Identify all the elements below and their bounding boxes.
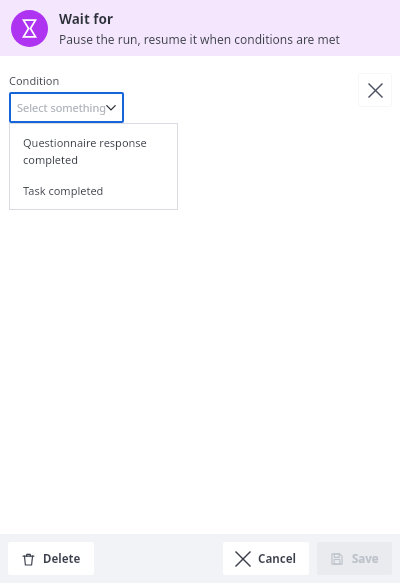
staticText: Wait for bbox=[59, 10, 113, 28]
staticText: Delete bbox=[43, 551, 81, 567]
button[interactable]: Save bbox=[317, 542, 392, 575]
staticText: Condition bbox=[9, 73, 60, 88]
button[interactable]: Delete bbox=[8, 542, 94, 575]
staticText: Save bbox=[352, 551, 379, 567]
button[interactable]: Close bbox=[359, 74, 391, 106]
staticText: Task completed bbox=[23, 183, 104, 198]
staticText: Select something bbox=[17, 100, 106, 115]
staticText: Pause the run, resume it when conditions… bbox=[59, 31, 340, 47]
staticText: Questionnaire response bbox=[23, 135, 147, 150]
staticText: Cancel bbox=[258, 551, 296, 567]
button[interactable]: Cancel bbox=[223, 542, 309, 575]
button[interactable]: Questionnaire response bbox=[9, 131, 178, 171]
button[interactable]: Select something bbox=[9, 92, 124, 123]
staticText: completed bbox=[23, 152, 78, 167]
button[interactable]: Task completed bbox=[9, 179, 178, 202]
